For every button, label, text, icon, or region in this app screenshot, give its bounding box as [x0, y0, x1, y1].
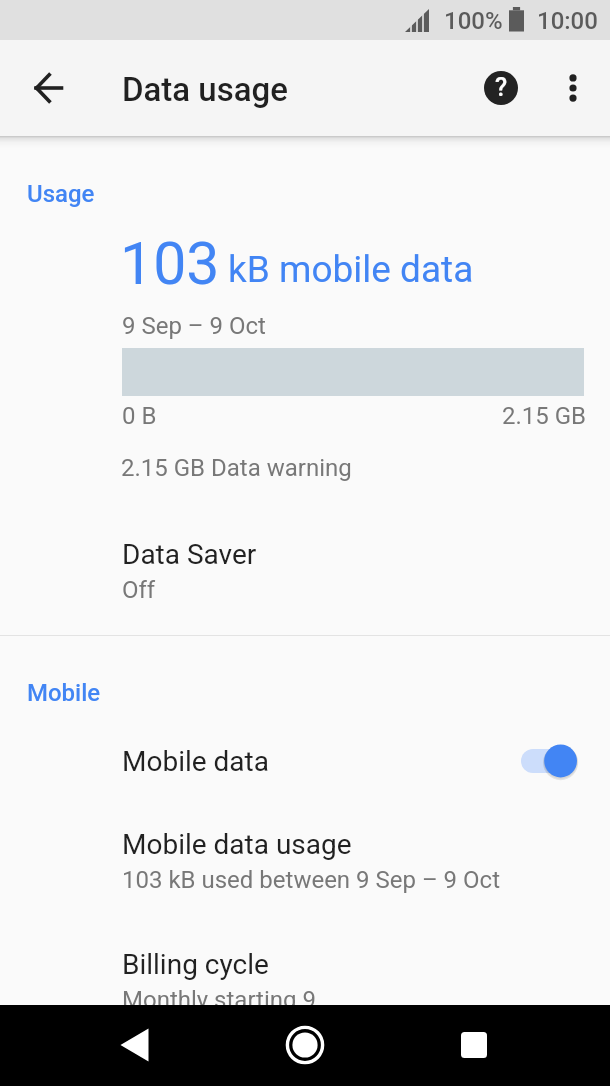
staticText: Data Saver	[122, 538, 257, 571]
button[interactable]: Mobile data usage	[0, 816, 610, 906]
staticText: Monthly starting 9	[122, 986, 316, 1014]
staticText: Mobile	[27, 679, 101, 707]
staticText: 103	[120, 229, 220, 298]
staticText: Usage	[27, 180, 95, 208]
staticText: Mobile data	[122, 745, 269, 778]
staticText: Mobile data usage	[122, 828, 352, 861]
staticText: 0 B	[122, 402, 157, 430]
staticText: 10:00	[537, 7, 598, 35]
staticText: 103 kB used between 9 Sep – 9 Oct	[122, 866, 500, 894]
staticText: Billing cycle	[122, 948, 269, 981]
button[interactable]: Data Saver	[0, 526, 610, 616]
staticText: 9 Sep – 9 Oct	[122, 312, 266, 340]
button[interactable]: Recent apps	[442, 1013, 506, 1077]
button[interactable]: Back	[103, 1013, 167, 1077]
staticText: 2.15 GB Data warning	[121, 454, 352, 482]
button[interactable]: Billing cycle	[0, 936, 610, 1026]
button[interactable]: Mobile data	[0, 729, 610, 793]
button[interactable]: Help	[473, 60, 529, 116]
staticText: kB mobile data	[228, 248, 474, 291]
staticText: 100%	[444, 7, 503, 35]
staticText: ?	[495, 73, 508, 102]
button[interactable]: Home	[273, 1013, 337, 1077]
button[interactable]: More options	[545, 60, 601, 116]
staticText: Off	[122, 576, 156, 604]
button[interactable]: Back	[19, 59, 77, 117]
staticText: Data usage	[122, 70, 288, 109]
staticText: 2.15 GB	[502, 402, 587, 430]
